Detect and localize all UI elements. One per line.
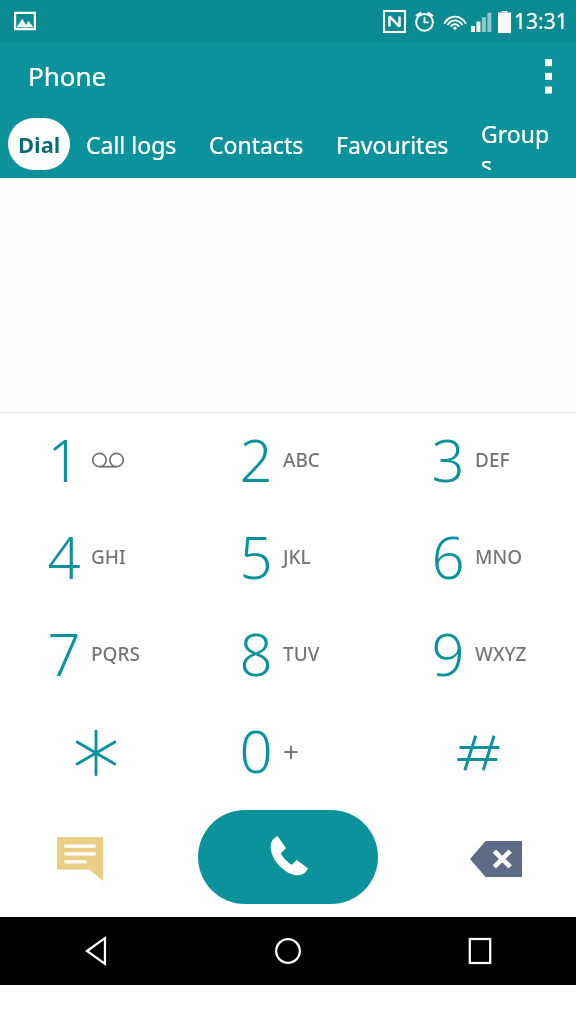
button[interactable] [384,704,576,801]
staticText: GHI [91,544,126,570]
button[interactable]: Backspace [460,823,532,895]
staticText: 5 [239,517,273,596]
button[interactable]: Dial [8,118,70,170]
staticText: TUV [283,641,320,667]
staticText: WXYZ [475,641,527,667]
staticText: Groups [481,118,560,170]
staticText: ABC [283,447,320,473]
staticText: Contacts [209,129,304,160]
staticText: DEF [475,447,510,473]
staticText: 7 [47,614,81,693]
button[interactable]: 0 [192,704,384,801]
button[interactable]: 3 [384,413,576,510]
button[interactable]: Favourites [320,118,465,170]
button[interactable]: More options [520,47,576,103]
button[interactable]: 6 [384,510,576,607]
button[interactable]: 8 [192,607,384,704]
staticText: 0 [239,711,273,790]
staticText: 8 [239,614,273,693]
button[interactable]: Message [44,823,116,895]
staticText: Phone [28,58,107,93]
staticText: 6 [431,517,465,596]
button[interactable]: 7 [0,607,192,704]
button[interactable]: 9 [384,607,576,704]
button[interactable]: 1 [0,413,192,510]
button[interactable]: Back [0,917,192,985]
staticText: + [283,732,300,770]
staticText: JKL [283,544,311,570]
staticText: 9 [431,614,465,693]
staticText: MNO [475,544,523,570]
staticText: Favourites [336,129,449,160]
button[interactable] [0,704,192,801]
staticText: 13:31 [514,7,568,36]
button[interactable]: 5 [192,510,384,607]
button[interactable]: Call [198,810,378,904]
button[interactable]: 2 [192,413,384,510]
button[interactable]: Recent apps [384,917,576,985]
staticText: 4 [47,517,81,596]
button[interactable]: Groups [465,118,576,170]
staticText: 2 [239,420,273,499]
button[interactable]: 4 [0,510,192,607]
button[interactable]: Call logs [70,118,193,170]
staticText: 3 [431,420,465,499]
button[interactable]: Contacts [193,118,320,170]
staticText: PQRS [91,641,140,667]
staticText: Call logs [86,129,177,160]
button[interactable]: Home [192,917,384,985]
staticText: 1 [47,420,81,499]
staticText: Dial [18,129,61,159]
